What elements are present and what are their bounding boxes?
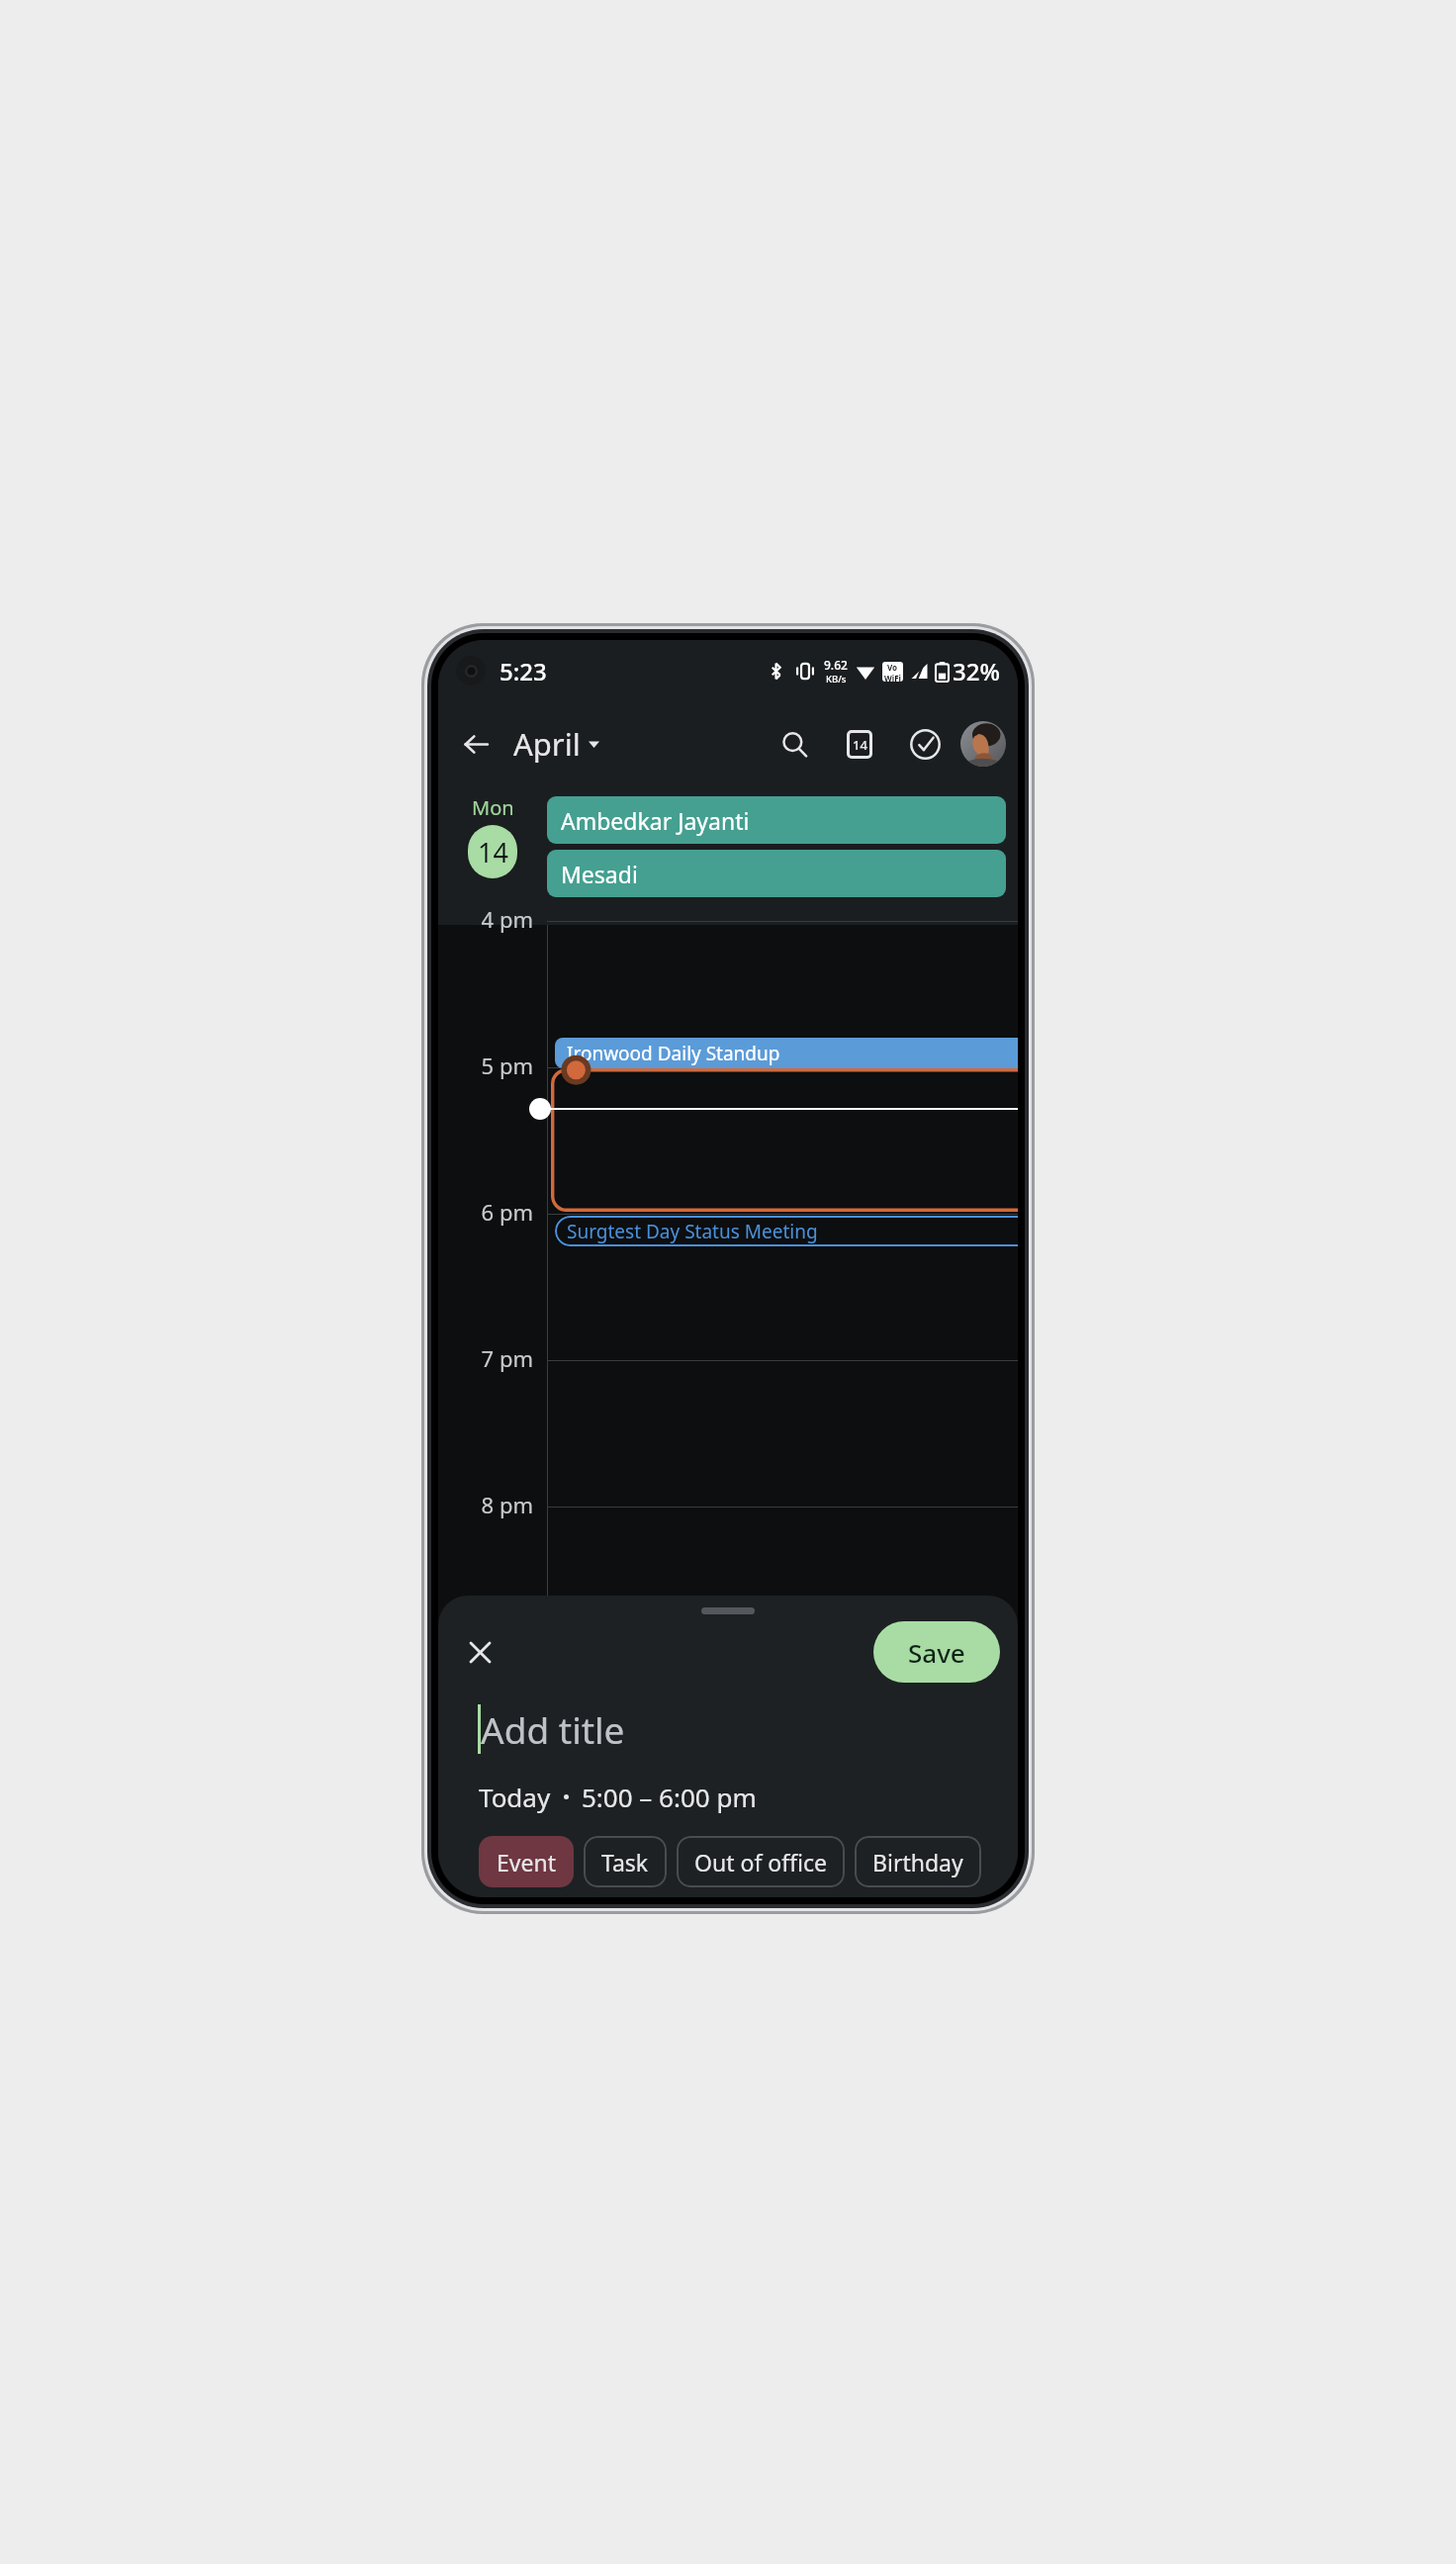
staticText: 9 pm <box>481 1636 533 1666</box>
button[interactable]: Tasks <box>899 718 951 770</box>
button[interactable]: Back <box>450 718 501 770</box>
staticText: Ironwood Daily Standup <box>567 1041 780 1066</box>
button[interactable] <box>551 1068 1018 1212</box>
staticText: 32% <box>953 655 1000 687</box>
staticText: 6 pm <box>481 1197 533 1227</box>
staticText: 9.62 <box>824 657 848 673</box>
staticText: 5:00 – 6:00 pm <box>582 1780 757 1814</box>
button[interactable]: Ambedkar Jayanti <box>547 796 1006 844</box>
button[interactable]: Event <box>479 1836 574 1887</box>
staticText: Ambedkar Jayanti <box>561 805 750 836</box>
staticText: Today <box>479 1780 551 1814</box>
staticText: Mon <box>472 794 514 821</box>
staticText: 5 pm <box>481 1051 533 1080</box>
staticText: Surgtest Day Status Meeting <box>567 1219 818 1244</box>
button[interactable]: Surgtest Day Status Meeting <box>555 1216 1018 1246</box>
staticText: 10 pm <box>469 1783 533 1812</box>
staticText: 7 pm <box>481 1343 533 1373</box>
button[interactable]: Ironwood Daily Standup <box>555 1038 1018 1068</box>
staticText: 5:23 <box>500 655 547 687</box>
button[interactable]: Birthday <box>855 1836 981 1887</box>
staticText: April <box>513 723 581 765</box>
button[interactable]: Search <box>769 718 820 770</box>
staticText: Event <box>497 1847 556 1877</box>
staticText: Out of office <box>694 1847 827 1877</box>
staticText: 14 <box>478 834 508 870</box>
staticText: Mesadi <box>561 859 638 889</box>
button[interactable]: 14 <box>468 825 517 878</box>
staticText: 14 <box>853 736 867 754</box>
button[interactable]: Save <box>873 1621 1000 1683</box>
staticText: Birthday <box>872 1847 963 1877</box>
button[interactable]: Add title <box>478 1704 1018 1754</box>
button[interactable]: Mesadi <box>547 850 1006 897</box>
staticText: WiFi <box>884 673 901 682</box>
button[interactable]: Today <box>834 718 885 770</box>
staticText: 8 pm <box>481 1490 533 1519</box>
staticText: Vo <box>887 662 898 673</box>
staticText: 4 pm <box>481 904 533 934</box>
staticText: Add title <box>481 1704 625 1754</box>
button[interactable]: Task <box>584 1836 667 1887</box>
staticText: KB/s <box>826 673 847 686</box>
button[interactable]: Close <box>454 1626 505 1678</box>
staticText: Save <box>908 1635 965 1670</box>
button[interactable]: April <box>509 717 603 771</box>
button[interactable]: Account <box>960 721 1006 767</box>
staticText: Task <box>601 1847 649 1877</box>
button[interactable]: Out of office <box>677 1836 845 1887</box>
